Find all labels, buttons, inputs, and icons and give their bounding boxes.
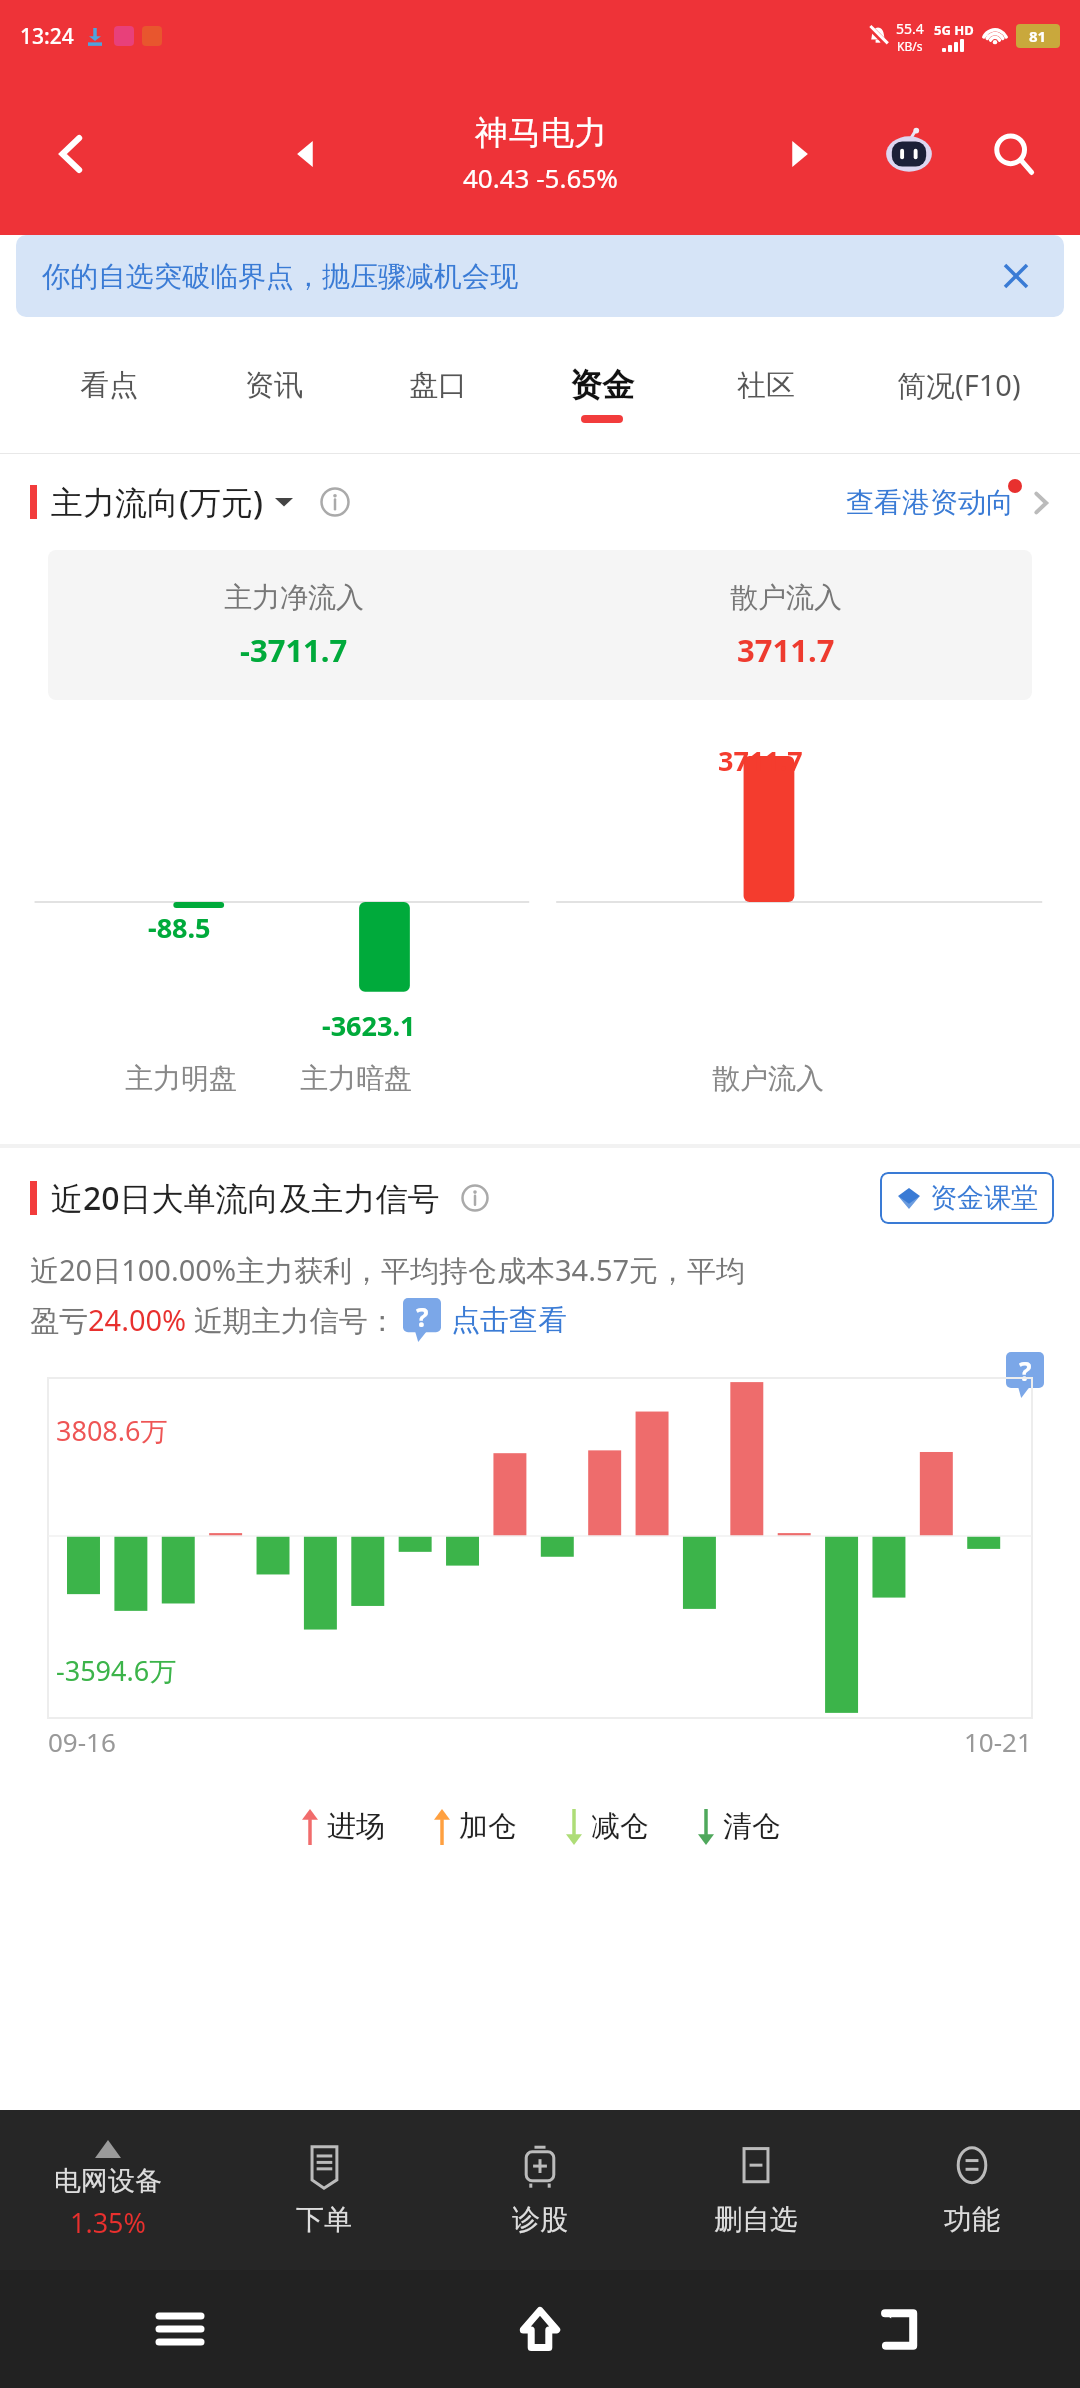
button[interactable]: 查看港资动向 — [846, 485, 1054, 520]
button[interactable]: AI assistant — [873, 118, 945, 190]
staticText: -88.5 — [148, 909, 211, 946]
staticText: 盘口 — [409, 367, 467, 404]
staticText: 资讯 — [245, 367, 303, 404]
staticText: 1.35% — [70, 2204, 147, 2241]
staticText: ? — [1019, 1353, 1032, 1388]
staticText: 加仓 — [459, 1808, 517, 1845]
staticText: 40.43 -5.65% — [463, 160, 618, 195]
button[interactable]: 下单 — [216, 2110, 432, 2270]
button[interactable]: Next stock — [766, 122, 830, 186]
button[interactable]: 盘口 — [356, 335, 520, 453]
staticText: 主力净流入 — [224, 580, 364, 615]
staticText: 资金 — [570, 365, 634, 405]
staticText: 诊股 — [512, 2202, 568, 2237]
staticText: 主力明盘 — [125, 1061, 237, 1096]
button[interactable]: 看点 — [26, 335, 191, 453]
staticText: 3808.6万 — [56, 1412, 168, 1449]
button[interactable]: 电网设备 — [0, 2110, 216, 2270]
button[interactable]: 资金课堂 — [880, 1172, 1054, 1224]
staticText: 减仓 — [591, 1808, 649, 1845]
button[interactable]: 简况(F10) — [848, 335, 1070, 453]
button[interactable]: 社区 — [684, 335, 848, 453]
button[interactable]: 进场 — [299, 1808, 385, 1845]
button[interactable]: Previous stock — [275, 122, 339, 186]
staticText: 3711.7 — [737, 629, 835, 671]
staticText: 电网设备 — [54, 2164, 162, 2198]
button[interactable]: Search — [978, 118, 1050, 190]
button[interactable]: 资金 — [520, 335, 684, 453]
staticText: 简况(F10) — [897, 365, 1021, 405]
staticText: 3711.7 — [718, 742, 803, 779]
staticText: 盈亏24.00% 近期主力信号： — [30, 1300, 397, 1340]
staticText: 主力暗盘 — [300, 1061, 412, 1096]
staticText: -3594.6万 — [56, 1652, 177, 1689]
button[interactable]: 加仓 — [431, 1808, 517, 1845]
staticText: 进场 — [327, 1808, 385, 1845]
button[interactable]: 主力净流入 — [48, 550, 540, 700]
staticText: 09-16 — [48, 1724, 116, 1759]
button[interactable]: 减仓 — [563, 1808, 649, 1845]
button[interactable]: Home — [360, 2270, 720, 2388]
button[interactable]: 你的自选突破临界点，抛压骤减机会现 — [16, 235, 1064, 317]
staticText: 功能 — [944, 2202, 1000, 2237]
staticText: 近20日大单流向及主力信号 — [51, 1176, 440, 1220]
staticText: 13:24 — [20, 22, 74, 51]
staticText: 散户流入 — [712, 1061, 824, 1096]
staticText: 81 — [1029, 26, 1047, 46]
button[interactable]: 诊股 — [432, 2110, 648, 2270]
button[interactable]: Info about large orders — [456, 1179, 494, 1217]
staticText: 社区 — [737, 367, 795, 404]
button[interactable]: Chart help — [1006, 1352, 1044, 1398]
staticText: 主力流向(万元) — [51, 480, 263, 524]
staticText: -3623.1 — [322, 1007, 416, 1044]
button[interactable]: 功能 — [864, 2110, 1080, 2270]
staticText: 神马电力 — [475, 112, 607, 154]
button[interactable]: Info about main fund flow — [315, 482, 355, 522]
staticText: ? — [416, 1299, 429, 1334]
staticText: 删自选 — [714, 2202, 798, 2237]
button[interactable]: 主力流向(万元) — [51, 480, 293, 524]
button[interactable]: 清仓 — [695, 1808, 781, 1845]
staticText: KB/s — [897, 38, 923, 54]
button[interactable]: 散户流入 — [540, 550, 1032, 700]
button[interactable]: Back — [36, 118, 108, 190]
staticText: 下单 — [296, 2202, 352, 2237]
button[interactable]: 删自选 — [648, 2110, 864, 2270]
staticText: 看点 — [80, 367, 138, 404]
staticText: 散户流入 — [730, 580, 842, 615]
staticText: 资金课堂 — [930, 1181, 1038, 1215]
staticText: 清仓 — [723, 1808, 781, 1845]
button[interactable]: Close banner — [994, 254, 1038, 298]
button[interactable]: Recent apps — [0, 2270, 360, 2388]
button[interactable]: 点击查看 — [451, 1302, 567, 1339]
staticText: 查看港资动向 — [846, 485, 1014, 520]
staticText: -3711.7 — [240, 629, 348, 671]
button[interactable]: Back — [720, 2270, 1080, 2388]
staticText: 你的自选突破临界点，抛压骤减机会现 — [42, 259, 518, 294]
button[interactable]: 资讯 — [191, 335, 356, 453]
staticText: 5G HD — [934, 21, 974, 39]
staticText: 近20日100.00%主力获利，平均持仓成本34.57元，平均 — [30, 1250, 746, 1290]
staticText: 10-21 — [964, 1724, 1032, 1759]
button[interactable]: 神马电力 — [463, 112, 618, 195]
staticText: 55.4 — [896, 19, 924, 38]
